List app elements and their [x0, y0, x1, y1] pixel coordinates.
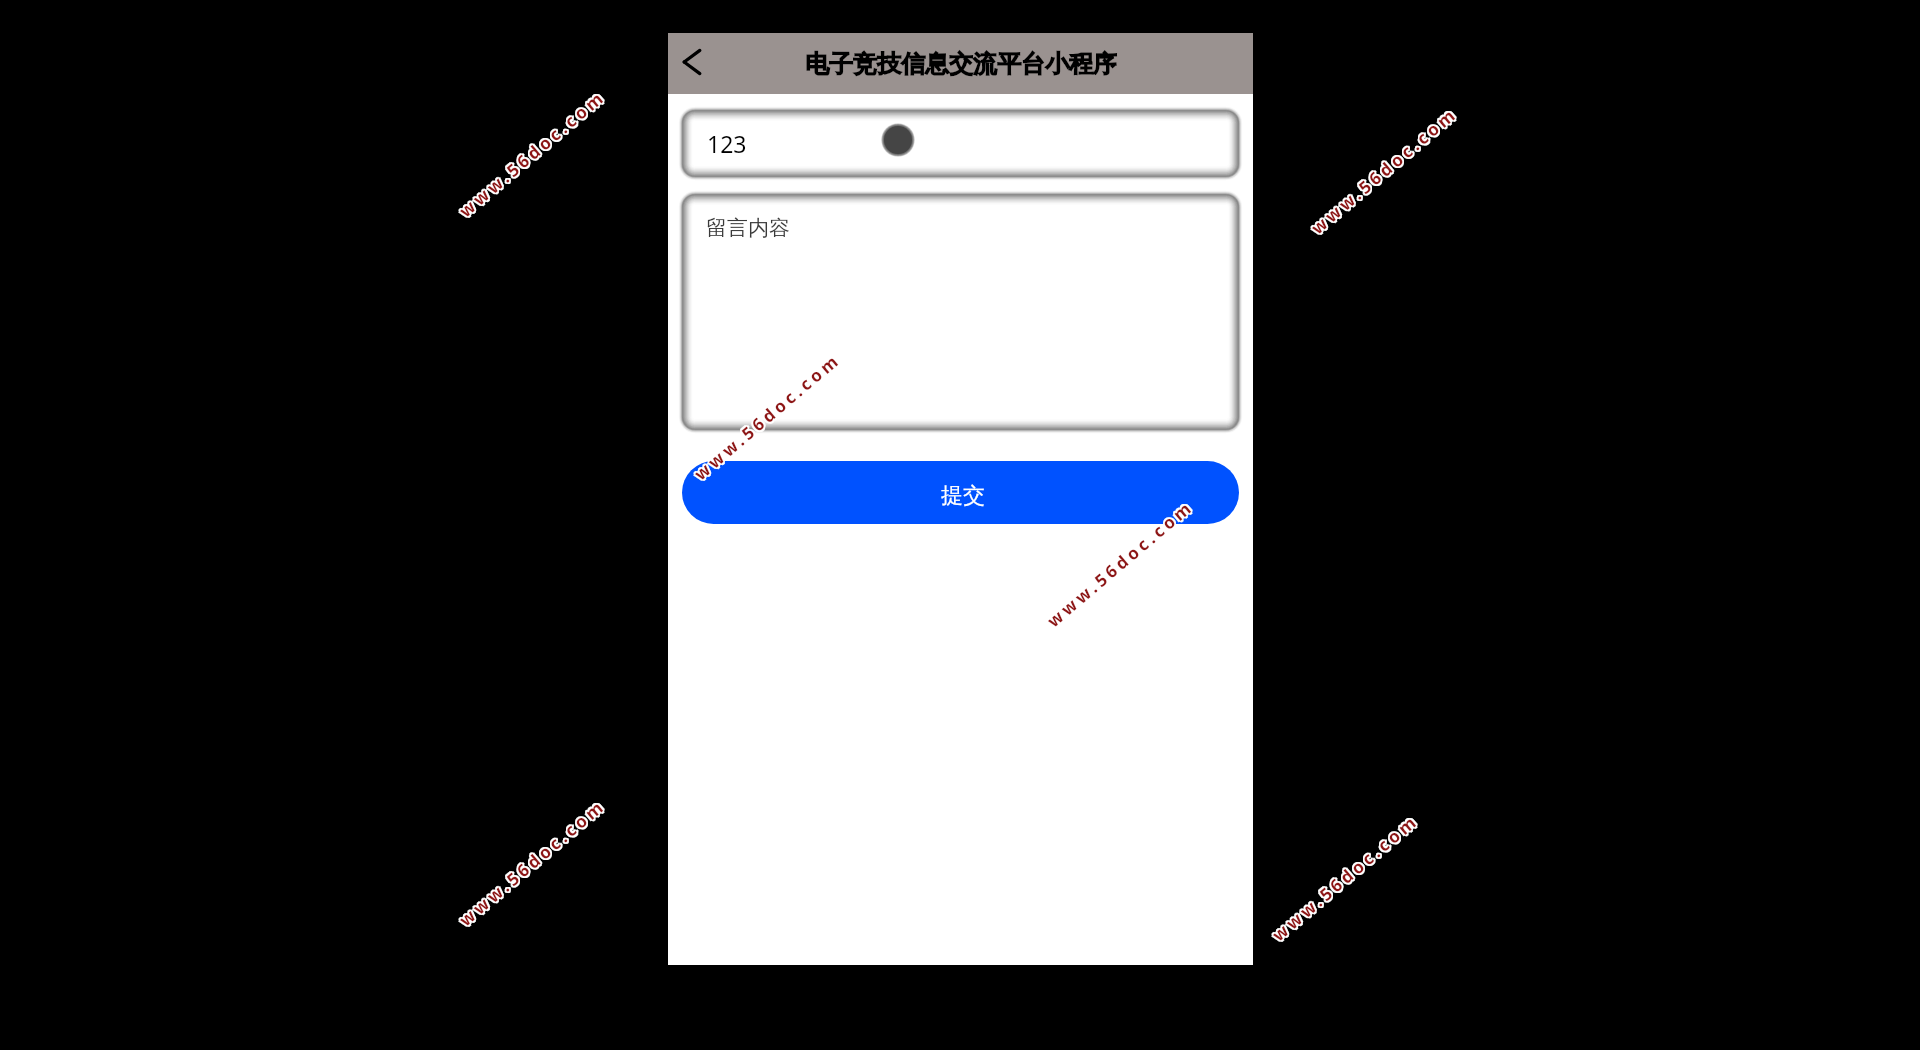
button[interactable]: 123	[682, 110, 1239, 177]
staticText: www.56doc.com	[690, 349, 846, 486]
staticText: www.56doc.com	[1306, 103, 1462, 240]
staticText: www.56doc.com	[1043, 495, 1199, 632]
staticText: www.56doc.com	[1041, 493, 1197, 630]
staticText: www.56doc.com	[1042, 495, 1198, 632]
staticText: www.56doc.com	[453, 795, 609, 932]
staticText: www.56doc.com	[453, 83, 609, 220]
staticText: www.56doc.com	[453, 86, 609, 223]
staticText: www.56doc.com	[1266, 807, 1422, 944]
staticText: www.56doc.com	[1306, 100, 1462, 238]
staticText: www.56doc.com	[1042, 493, 1198, 631]
staticText: www.56doc.com	[454, 795, 610, 932]
button[interactable]: 留言内容	[682, 194, 1239, 430]
staticText: 电子竞技信息交流平台小程序	[805, 49, 1117, 79]
staticText: www.56doc.com	[455, 86, 611, 223]
staticText: www.56doc.com	[688, 348, 844, 485]
staticText: www.56doc.com	[1268, 810, 1424, 947]
staticText: www.56doc.com	[1305, 103, 1461, 240]
staticText: www.56doc.com	[1043, 496, 1199, 633]
staticText: www.56doc.com	[690, 348, 846, 485]
staticText: www.56doc.com	[1266, 810, 1422, 947]
staticText: www.56doc.com	[1266, 809, 1422, 946]
staticText: www.56doc.com	[689, 346, 845, 484]
staticText: www.56doc.com	[1305, 100, 1461, 237]
staticText: www.56doc.com	[1041, 496, 1197, 633]
staticText: www.56doc.com	[454, 86, 610, 223]
staticText: www.56doc.com	[453, 794, 609, 931]
staticText: www.56doc.com	[453, 85, 609, 222]
staticText: www.56doc.com	[691, 346, 847, 484]
staticText: www.56doc.com	[1305, 102, 1461, 239]
staticText: www.56doc.com	[454, 85, 610, 222]
staticText: www.56doc.com	[1308, 100, 1464, 238]
staticText: www.56doc.com	[1306, 102, 1462, 239]
staticText: www.56doc.com	[688, 346, 844, 483]
staticText: www.56doc.com	[455, 794, 611, 931]
staticText: www.56doc.com	[1307, 103, 1463, 240]
staticText: www.56doc.com	[1041, 495, 1197, 632]
staticText: www.56doc.com	[454, 792, 610, 930]
button[interactable]: Back	[670, 42, 714, 86]
staticText: 123	[707, 128, 747, 159]
staticText: www.56doc.com	[454, 83, 610, 221]
staticText: www.56doc.com	[1267, 807, 1423, 945]
staticText: www.56doc.com	[1267, 810, 1423, 947]
staticText: www.56doc.com	[455, 795, 611, 932]
staticText: www.56doc.com	[689, 349, 845, 486]
button[interactable]: 提交	[682, 461, 1239, 524]
staticText: www.56doc.com	[1307, 102, 1463, 239]
staticText: www.56doc.com	[1267, 809, 1423, 946]
staticText: www.56doc.com	[456, 83, 612, 221]
staticText: www.56doc.com	[689, 348, 845, 485]
staticText: www.56doc.com	[1044, 493, 1200, 631]
staticText: 留言内容	[706, 215, 790, 241]
staticText: www.56doc.com	[688, 349, 844, 486]
staticText: www.56doc.com	[456, 792, 612, 930]
staticText: 提交	[941, 482, 985, 510]
staticText: www.56doc.com	[455, 85, 611, 222]
staticText: www.56doc.com	[1042, 496, 1198, 633]
staticText: www.56doc.com	[453, 792, 609, 929]
staticText: www.56doc.com	[454, 794, 610, 931]
staticText: www.56doc.com	[1269, 807, 1425, 945]
staticText: www.56doc.com	[1268, 809, 1424, 946]
